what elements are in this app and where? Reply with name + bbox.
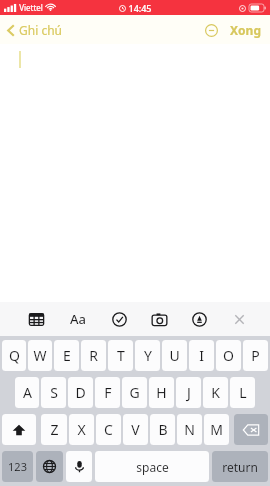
button[interactable]: Y (135, 340, 160, 371)
staticText: I (199, 346, 204, 365)
button[interactable]: More options (199, 18, 224, 43)
button[interactable]: J (176, 377, 201, 408)
button[interactable]: A (15, 377, 39, 408)
button[interactable]: return (212, 451, 268, 482)
button[interactable]: Q (2, 340, 26, 371)
staticText: Y (144, 346, 152, 365)
button[interactable]: O (216, 340, 241, 371)
button[interactable]: space (95, 451, 209, 482)
staticText: F (104, 383, 112, 402)
button[interactable]: Checklist (109, 309, 130, 330)
staticText: A (23, 383, 32, 402)
button[interactable]: K (203, 377, 228, 408)
button[interactable]: Camera (149, 309, 170, 330)
staticText: B (158, 420, 168, 439)
staticText: 123 (8, 459, 27, 474)
staticText: V (131, 420, 140, 439)
staticText: Xong (230, 22, 261, 38)
staticText: H (156, 383, 167, 402)
staticText: Q (9, 346, 20, 365)
button[interactable]: Aa (66, 306, 90, 332)
button[interactable]: Shift (2, 414, 36, 445)
staticText: D (75, 383, 86, 402)
button[interactable]: D (68, 377, 93, 408)
button[interactable]: Table (26, 309, 47, 330)
button[interactable]: Backspace (234, 414, 268, 445)
staticText: space (136, 459, 169, 475)
button[interactable]: R (81, 340, 106, 371)
button[interactable]: Close keyboard (229, 309, 250, 330)
button[interactable]: Xong (224, 17, 270, 43)
staticText: W (33, 346, 47, 365)
staticText: J (187, 383, 191, 402)
staticText: S (50, 383, 58, 402)
staticText: N (184, 420, 195, 439)
button[interactable]: V (123, 414, 148, 445)
button[interactable]: N (177, 414, 202, 445)
staticText: 14:45 (128, 2, 152, 14)
button[interactable]: Change keyboard language (36, 451, 63, 482)
button[interactable]: L (230, 377, 255, 408)
button[interactable]: Dictation (66, 451, 92, 482)
button[interactable]: 123 (2, 451, 33, 482)
staticText: return (222, 459, 258, 475)
staticText: T (117, 346, 125, 365)
button[interactable]: Ghi chú (0, 18, 70, 42)
button[interactable]: Z (41, 414, 67, 445)
staticText: X (77, 420, 86, 439)
button[interactable]: S (41, 377, 66, 408)
button[interactable]: X (69, 414, 94, 445)
staticText: P (251, 346, 260, 365)
button[interactable]: C (96, 414, 121, 445)
staticText: Ghi chú (19, 22, 62, 38)
staticText: G (129, 383, 140, 402)
button[interactable]: G (122, 377, 147, 408)
button[interactable]: Markup (189, 309, 210, 330)
button[interactable]: F (95, 377, 120, 408)
button[interactable]: H (149, 377, 174, 408)
button[interactable]: M (204, 414, 229, 445)
button[interactable]: U (162, 340, 187, 371)
staticText: Z (50, 420, 59, 439)
staticText: R (89, 346, 98, 365)
staticText: Viettel (19, 2, 43, 13)
staticText: U (169, 346, 180, 365)
staticText: L (239, 383, 247, 402)
staticText: E (63, 346, 71, 365)
staticText: K (211, 383, 220, 402)
staticText: O (223, 346, 234, 365)
button[interactable]: T (108, 340, 133, 371)
button[interactable]: P (243, 340, 268, 371)
staticText: Aa (70, 310, 86, 328)
staticText: C (104, 420, 113, 439)
staticText: M (210, 420, 223, 439)
button[interactable]: B (150, 414, 175, 445)
button[interactable]: E (54, 340, 79, 371)
button[interactable]: I (189, 340, 214, 371)
button[interactable]: W (28, 340, 52, 371)
